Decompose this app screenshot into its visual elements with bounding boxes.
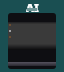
staticText: AI — [26, 0, 39, 12]
